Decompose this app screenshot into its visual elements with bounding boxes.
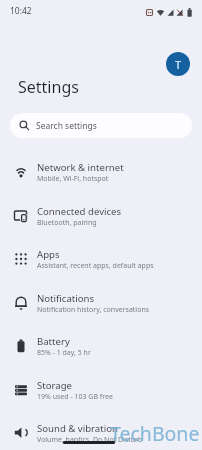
staticText: TechBone — [110, 420, 200, 447]
staticText: 85% - 1 day, 5 hr — [37, 348, 91, 358]
staticText: Volume, haptics, Do Not Disturb — [37, 435, 143, 445]
button[interactable]: Connected devices — [0, 194, 202, 238]
staticText: Apps — [37, 248, 60, 261]
button[interactable]: Network & internet — [0, 150, 202, 194]
staticText: Battery — [37, 335, 70, 348]
staticText: Sound & vibration — [37, 422, 118, 435]
staticText: Mobile, Wi-Fi, hotspot — [37, 174, 109, 184]
staticText: 19% used - 103 GB free — [37, 392, 113, 402]
staticText: Notifications — [37, 292, 95, 305]
button[interactable]: Storage — [0, 368, 202, 412]
button[interactable]: T — [166, 52, 190, 76]
button[interactable]: Apps — [0, 237, 202, 281]
button[interactable]: Battery — [0, 324, 202, 368]
staticText: Notification history, conversations — [37, 305, 150, 315]
staticText: Bluetooth, pairing — [37, 218, 97, 228]
staticText: Search settings — [36, 120, 97, 132]
staticText: Settings — [18, 76, 79, 98]
staticText: Connected devices — [37, 205, 122, 218]
staticText: Storage — [37, 379, 72, 392]
button[interactable]: Search settings — [10, 113, 192, 138]
staticText: Network & internet — [37, 161, 124, 174]
staticText: T — [175, 57, 182, 72]
button[interactable]: Sound & vibration — [0, 411, 202, 450]
staticText: 10:42 — [10, 5, 32, 17]
staticText: Assistant, recent apps, default apps — [37, 261, 154, 271]
button[interactable]: Notifications — [0, 281, 202, 325]
